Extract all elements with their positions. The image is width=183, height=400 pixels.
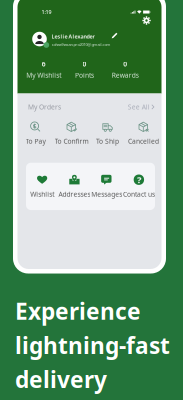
staticText: Messages (91, 190, 122, 199)
staticText: To Pay (25, 137, 45, 146)
button[interactable]: To Pay (17, 121, 53, 146)
staticText: lightning-fast (15, 330, 170, 360)
button[interactable]: Cancelled (125, 121, 161, 146)
button[interactable]: ? (123, 174, 155, 199)
button[interactable]: Wishlist (26, 174, 58, 199)
staticText: Cancelled (128, 137, 159, 146)
button[interactable]: 0 (64, 60, 105, 79)
staticText: Leslie Alexander (52, 33, 95, 40)
button[interactable]: Addresses (58, 174, 90, 199)
button[interactable]: 0 (105, 60, 145, 79)
staticText: My Orders (28, 102, 61, 111)
staticText: Contact us (123, 190, 155, 199)
staticText: To Confirm (54, 137, 88, 146)
staticText: See All (128, 102, 150, 111)
staticText: Addresses (58, 190, 90, 199)
button[interactable]: To Ship (89, 121, 125, 146)
button[interactable]: Messages (90, 174, 123, 199)
staticText: 6 (42, 60, 46, 68)
staticText: delivery (15, 364, 107, 394)
staticText: Wishlist (30, 190, 54, 199)
staticText: Experience (15, 296, 141, 326)
staticText: Points (75, 71, 94, 79)
button[interactable]: Edit profile (111, 32, 118, 39)
button[interactable]: Settings (141, 15, 151, 25)
staticText: 1:19 (41, 8, 51, 16)
staticText: ? (137, 173, 141, 186)
button[interactable]: See All (128, 102, 154, 111)
staticText: 0 (123, 60, 127, 68)
staticText: 0 (82, 60, 86, 68)
staticText: My Wishlist (26, 71, 61, 79)
button[interactable]: To Confirm (53, 121, 89, 146)
staticText: sohaelhasan.pro2010@gmail.com (52, 42, 111, 47)
button[interactable]: 6 (23, 60, 64, 79)
staticText: Rewards (112, 71, 139, 79)
staticText: To Ship (96, 137, 119, 146)
